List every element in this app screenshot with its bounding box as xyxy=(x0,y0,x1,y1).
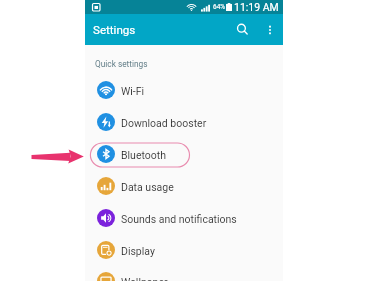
staticText: Settings xyxy=(93,23,136,37)
button[interactable]: Display xyxy=(85,234,283,266)
staticText: Wallpaper xyxy=(121,276,168,281)
button[interactable]: Wallpaper xyxy=(85,265,283,281)
staticText: Bluetooth xyxy=(121,149,166,161)
staticText: Sounds and notifications xyxy=(121,213,237,225)
button[interactable]: Sounds and notifications xyxy=(85,202,283,234)
button[interactable]: Data usage xyxy=(85,170,283,202)
staticText: Data usage xyxy=(121,181,174,193)
button[interactable]: Bluetooth xyxy=(85,138,283,170)
button[interactable]: More options xyxy=(257,14,283,45)
staticText: Download booster xyxy=(121,117,207,129)
button[interactable]: Download booster xyxy=(85,106,283,138)
button[interactable]: Wi-Fi xyxy=(85,74,283,106)
staticText: Quick settings xyxy=(95,59,148,69)
staticText: Display xyxy=(121,245,155,257)
staticText: Wi-Fi xyxy=(121,85,145,97)
button[interactable]: Search xyxy=(229,14,255,45)
staticText: 64% xyxy=(213,3,226,11)
staticText: 11:19 AM xyxy=(234,1,279,13)
